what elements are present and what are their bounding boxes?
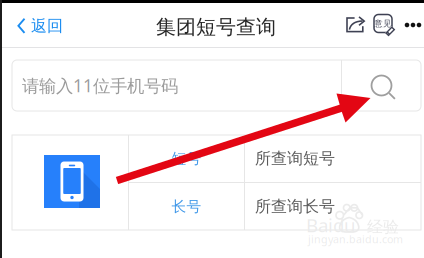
button[interactable]: 更多 xyxy=(398,3,424,47)
staticText: 请输入11位手机号码 xyxy=(22,74,178,97)
staticText: 返回 xyxy=(31,16,63,36)
staticText: jingyan.baidu.com xyxy=(308,232,403,246)
button[interactable]: 意见反馈 xyxy=(369,4,401,48)
button[interactable]: 返回 xyxy=(17,4,87,48)
staticText: 意见 xyxy=(374,18,392,29)
button[interactable]: 分享 xyxy=(339,3,373,47)
staticText: 所查询长号 xyxy=(255,196,335,217)
staticText: 长号 xyxy=(171,197,201,216)
button[interactable]: 查询 xyxy=(344,62,423,113)
staticText: 经验 xyxy=(367,217,399,237)
staticText: 所查询短号 xyxy=(255,148,335,169)
staticText: 短号 xyxy=(171,149,201,168)
staticText: 集团短号查询 xyxy=(156,14,276,40)
staticText: Baidu xyxy=(306,212,356,238)
